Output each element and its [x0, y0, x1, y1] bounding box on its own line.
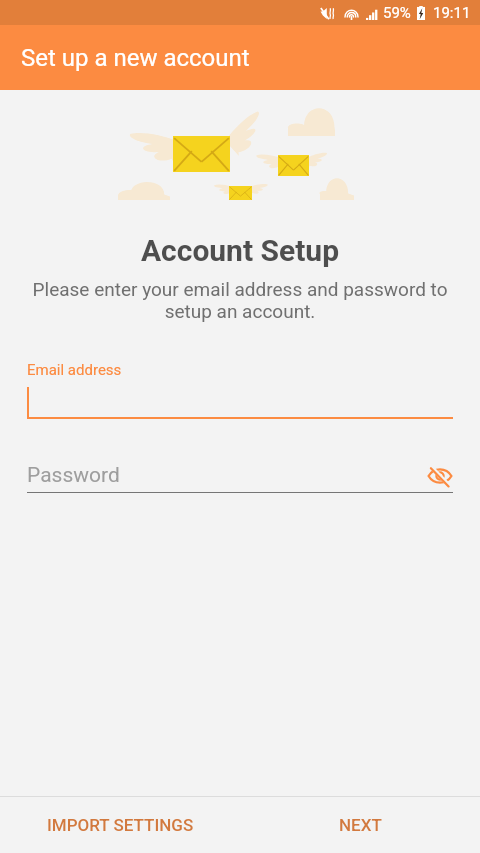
staticText: 19:11	[433, 4, 471, 22]
button[interactable]: Show password	[427, 463, 453, 489]
staticText: Password	[27, 463, 120, 488]
button[interactable]: Email address	[27, 361, 453, 419]
staticText: NEXT	[339, 815, 382, 835]
staticText: Account Setup	[0, 233, 480, 268]
staticText: Set up a new account	[21, 44, 250, 72]
button[interactable]: IMPORT SETTINGS	[0, 797, 240, 853]
button[interactable]: NEXT	[240, 797, 480, 853]
staticText: Email address	[27, 361, 122, 379]
button[interactable]: Password	[27, 459, 453, 493]
staticText: Please enter your email address and pass…	[28, 278, 452, 323]
staticText: 59%	[383, 4, 411, 22]
staticText: IMPORT SETTINGS	[47, 815, 194, 835]
